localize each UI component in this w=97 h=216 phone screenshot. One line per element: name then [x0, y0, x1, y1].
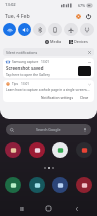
button[interactable]: Search Google — [6, 124, 91, 135]
staticText: 13:01 — [41, 60, 50, 64]
button[interactable]: App — [52, 142, 68, 158]
button[interactable]: Media — [44, 38, 63, 45]
button[interactable]: Recents — [15, 202, 28, 215]
button[interactable]: Quick setting on — [18, 23, 31, 36]
button[interactable]: Quick setting off — [80, 23, 94, 36]
staticText: Learn how to capture a whole page in a s… — [6, 88, 91, 92]
button[interactable]: Settings — [74, 12, 82, 20]
button[interactable]: App — [76, 142, 92, 158]
button[interactable]: Quick setting off — [64, 23, 78, 36]
staticText: Media — [50, 39, 62, 44]
button[interactable]: Notification settings — [40, 94, 75, 100]
button[interactable]: Quick setting off — [48, 23, 62, 36]
button[interactable]: Quick setting on — [3, 23, 16, 36]
button[interactable]: Home — [42, 202, 55, 215]
staticText: Tue, 4 Feb — [5, 12, 30, 19]
button[interactable]: Tips — [3, 80, 94, 102]
staticText: Tips — [12, 82, 19, 86]
button[interactable]: Clear — [79, 94, 90, 100]
staticText: Samsung capture — [12, 60, 39, 64]
button[interactable]: App — [29, 177, 45, 193]
staticText: Silent notifications — [6, 50, 38, 55]
button[interactable]: App — [5, 142, 21, 158]
button[interactable]: App — [76, 177, 92, 193]
button[interactable]: Devices — [68, 38, 89, 45]
button[interactable]: Power — [84, 12, 92, 20]
staticText: Clear — [80, 95, 89, 99]
staticText: Screenshot saved — [6, 65, 44, 71]
button[interactable]: Back — [70, 202, 83, 215]
staticText: 13:01 — [21, 82, 30, 86]
staticText: Notification settings — [41, 95, 74, 99]
staticText: 67% — [78, 3, 86, 8]
button[interactable]: App — [5, 177, 21, 193]
staticText: Devices — [74, 39, 88, 44]
staticText: Search Google — [36, 127, 61, 132]
button[interactable]: Quick setting off — [33, 23, 46, 36]
button[interactable]: Samsung capture — [3, 58, 94, 78]
button[interactable]: Silent notifications — [3, 48, 94, 56]
staticText: 13:02 — [5, 2, 16, 8]
staticText: Tap here to open the Gallery — [6, 72, 50, 76]
button[interactable]: App — [52, 177, 68, 193]
button[interactable]: App — [29, 142, 45, 158]
